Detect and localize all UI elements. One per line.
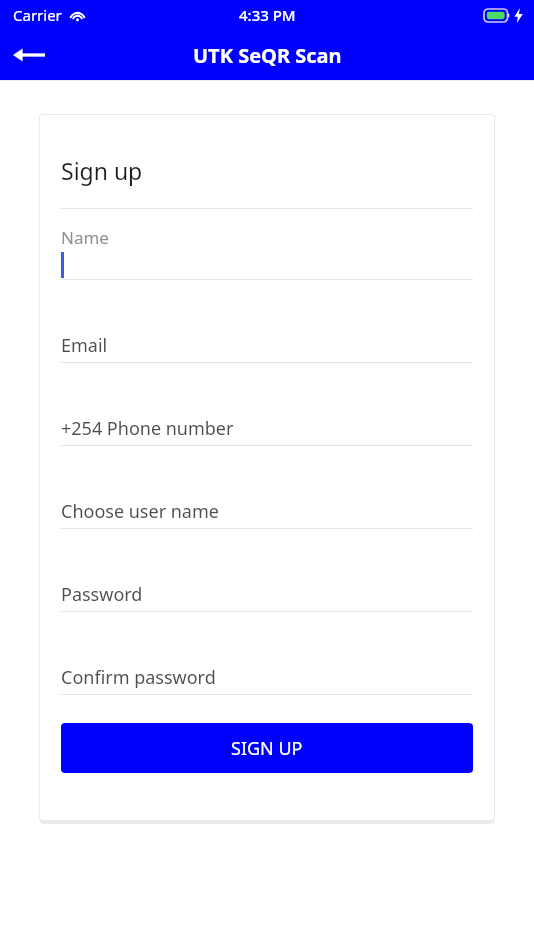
button[interactable]: +254 Phone number <box>61 416 473 446</box>
staticText: Password <box>61 582 143 607</box>
button[interactable]: Name <box>61 226 473 280</box>
button[interactable]: SIGN UP <box>61 723 473 773</box>
staticText: Name <box>61 226 109 249</box>
button[interactable]: Password <box>61 582 473 612</box>
staticText: Email <box>61 333 108 358</box>
button[interactable]: Choose user name <box>61 499 473 529</box>
staticText: Sign up <box>61 155 143 186</box>
button[interactable]: Back <box>0 30 58 80</box>
button[interactable]: Email <box>61 333 473 363</box>
staticText: SIGN UP <box>231 736 303 761</box>
staticText: UTK SeQR Scan <box>193 42 342 69</box>
button[interactable]: Confirm password <box>61 665 473 695</box>
staticText: 4:33 PM <box>239 5 296 25</box>
staticText: +254 Phone number <box>61 416 234 441</box>
staticText: Confirm password <box>61 665 216 690</box>
staticText: Carrier <box>13 5 62 25</box>
staticText: Choose user name <box>61 499 219 524</box>
